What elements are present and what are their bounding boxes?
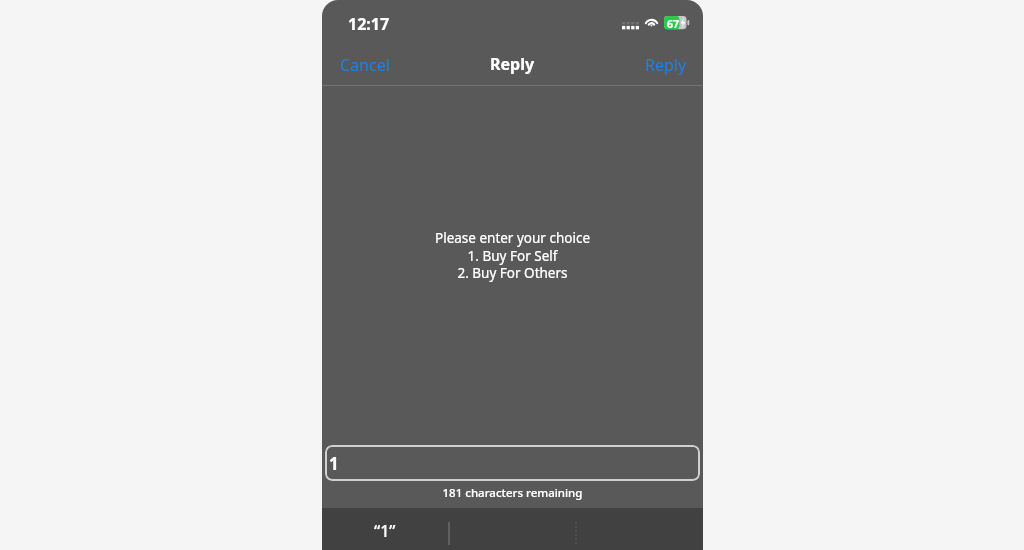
button[interactable]: Reply — [635, 47, 697, 83]
staticText: 67 — [667, 17, 680, 31]
staticText: 181 characters remaining — [322, 485, 703, 501]
button[interactable]: Cancel — [330, 47, 400, 83]
other: Cellular signal — [622, 15, 639, 29]
staticText: 12:17 — [348, 13, 390, 35]
other: Wi-Fi — [643, 12, 660, 27]
staticText: Cancel — [340, 54, 390, 76]
staticText: “1” — [374, 520, 396, 542]
staticText: 1 — [329, 452, 339, 475]
button[interactable]: “1” — [322, 508, 449, 550]
button[interactable]: 1 — [325, 445, 700, 481]
staticText: Please enter your choice 1. Buy For Self… — [322, 229, 703, 282]
staticText: Reply — [490, 53, 535, 75]
other: Battery 67 percent, charging — [664, 16, 689, 30]
staticText: Reply — [645, 54, 687, 76]
